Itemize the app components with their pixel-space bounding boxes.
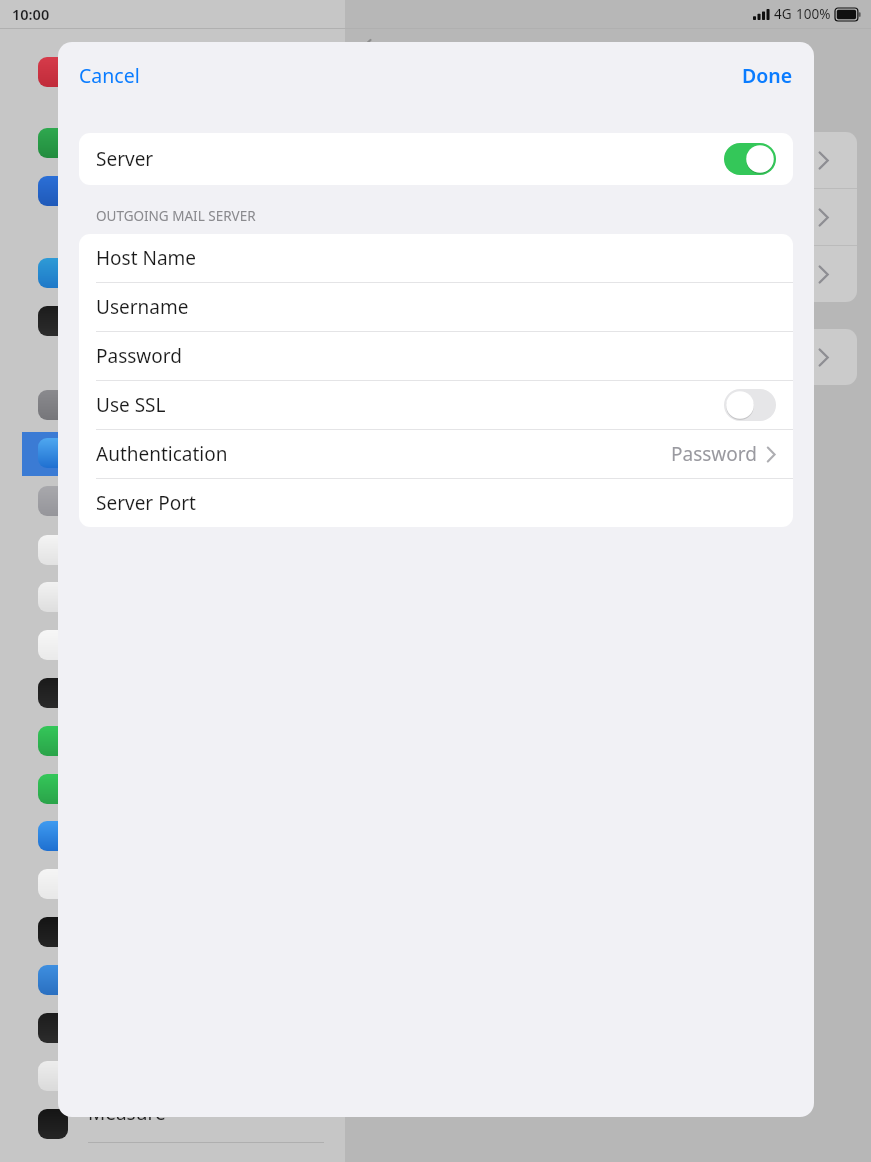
button[interactable]: Server [79, 133, 793, 185]
button[interactable]: Done [721, 56, 814, 95]
button[interactable]: Server Port [79, 479, 793, 527]
staticText: Password [671, 441, 757, 467]
staticText: OUTGOING MAIL SERVER [96, 207, 256, 225]
staticText: 10:00 [12, 4, 50, 24]
staticText: 4G [774, 5, 792, 23]
staticText: Cancel [79, 62, 140, 89]
staticText: Settings [133, 36, 215, 63]
staticText: Mail [385, 37, 423, 63]
button[interactable]: Use SSL [79, 381, 793, 429]
button[interactable]: Authentication [79, 430, 793, 478]
staticText: Password [96, 343, 182, 369]
staticText: Done [742, 62, 793, 89]
button[interactable]: Toggle on [724, 143, 776, 175]
staticText: Server Port [96, 490, 196, 516]
staticText: Use SSL [96, 392, 166, 418]
button[interactable]: Toggle off [724, 389, 776, 421]
staticText: Host Name [96, 245, 197, 271]
button[interactable]: Cancel [58, 56, 161, 95]
button[interactable]: Username [79, 283, 793, 331]
staticText: 100% [796, 5, 831, 23]
staticText: Username [96, 294, 189, 320]
staticText: Accounts [565, 36, 657, 63]
button[interactable]: Host Name [79, 234, 793, 282]
staticText: Measure [88, 1100, 166, 1126]
staticText: Server [96, 146, 154, 172]
staticText: Authentication [96, 441, 228, 467]
button[interactable]: Password [79, 332, 793, 380]
